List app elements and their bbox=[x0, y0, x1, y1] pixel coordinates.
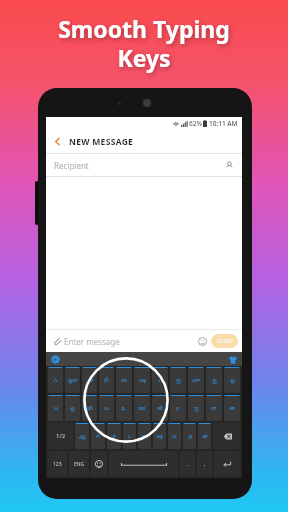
staticText: ா bbox=[86, 377, 94, 383]
staticText: . bbox=[187, 460, 189, 468]
staticText: ENG bbox=[74, 461, 85, 468]
button[interactable]: ENG bbox=[69, 451, 89, 477]
button[interactable]: Themes bbox=[227, 354, 238, 365]
button[interactable]: ஃ bbox=[152, 367, 168, 393]
button[interactable]: ற bbox=[183, 423, 196, 449]
button[interactable]: ஸு bbox=[188, 367, 204, 393]
button[interactable]: ஆ bbox=[75, 423, 89, 449]
button[interactable] bbox=[109, 451, 178, 477]
staticText: 123 bbox=[53, 461, 62, 468]
staticText: ஐ bbox=[212, 377, 217, 383]
staticText: NEW MESSAGE bbox=[69, 136, 134, 148]
button[interactable]: ஊ bbox=[134, 395, 150, 421]
staticText: ட bbox=[128, 433, 132, 439]
staticText: ன bbox=[202, 433, 208, 439]
staticText: ஃ bbox=[158, 377, 163, 383]
button[interactable]: ஈ bbox=[91, 423, 105, 449]
button[interactable]: ஙி bbox=[82, 395, 97, 421]
staticText: ஊ bbox=[138, 405, 146, 411]
staticText: ஓ bbox=[230, 377, 235, 383]
staticText: ன bbox=[229, 405, 235, 411]
button[interactable]: ம bbox=[99, 395, 114, 421]
staticText: ஈ bbox=[96, 433, 100, 439]
staticText: ஷ bbox=[156, 433, 163, 439]
button[interactable]: ம bbox=[168, 423, 181, 449]
staticText: ஸ bbox=[121, 377, 127, 383]
button[interactable]: ஃ bbox=[48, 367, 63, 393]
staticText: ஙி bbox=[87, 405, 93, 411]
staticText: , bbox=[204, 460, 206, 468]
staticText: ற bbox=[188, 433, 192, 439]
button[interactable]: ண bbox=[138, 423, 151, 449]
button[interactable] bbox=[214, 451, 240, 477]
button[interactable] bbox=[213, 423, 240, 449]
staticText: ர bbox=[176, 405, 180, 411]
staticText: ஙி bbox=[157, 405, 163, 411]
button[interactable]: ஜ bbox=[170, 367, 186, 393]
button[interactable] bbox=[91, 451, 107, 477]
button[interactable]: 123 bbox=[48, 451, 67, 477]
staticText: Enter message bbox=[64, 336, 120, 347]
button[interactable]: உ bbox=[116, 395, 132, 421]
staticText: ம bbox=[172, 433, 177, 439]
staticText: ஔ bbox=[68, 377, 78, 383]
button[interactable]: Emoji bbox=[195, 334, 209, 348]
staticText: 10:11 AM bbox=[209, 119, 238, 128]
button[interactable]: Attach file bbox=[50, 334, 64, 348]
button[interactable]: ஷ bbox=[153, 423, 166, 449]
staticText: ஒ bbox=[70, 405, 75, 411]
button[interactable]: SEND bbox=[211, 334, 238, 348]
button[interactable]: Keyboard settings bbox=[50, 354, 61, 365]
staticText: ள bbox=[211, 405, 217, 411]
staticText: ய bbox=[54, 405, 58, 411]
button[interactable]: ஐ bbox=[206, 367, 222, 393]
button[interactable]: 1/2 bbox=[48, 423, 73, 449]
button[interactable]: , bbox=[197, 451, 212, 477]
staticText: ஜ bbox=[194, 405, 199, 411]
button[interactable]: ஸ bbox=[116, 367, 132, 393]
button[interactable]: . bbox=[180, 451, 195, 477]
staticText: உ bbox=[121, 405, 127, 411]
staticText: ண bbox=[141, 433, 149, 439]
button[interactable]: ஙி bbox=[152, 395, 168, 421]
button[interactable]: ரி bbox=[99, 367, 114, 393]
staticText: ஸு bbox=[192, 377, 201, 383]
button[interactable]: ஒ bbox=[65, 395, 80, 421]
button[interactable]: ா bbox=[82, 367, 97, 393]
button[interactable]: Back bbox=[46, 130, 69, 153]
button[interactable]: ன bbox=[198, 423, 211, 449]
button[interactable]: ட bbox=[123, 423, 136, 449]
staticText: ஜ bbox=[176, 377, 181, 383]
button[interactable]: ய bbox=[48, 395, 63, 421]
button[interactable]: ர bbox=[170, 395, 186, 421]
staticText: ச bbox=[112, 433, 116, 439]
staticText: ம bbox=[104, 405, 109, 411]
staticText: Smooth Typing Keys bbox=[0, 13, 288, 74]
staticText: ரி bbox=[104, 377, 109, 383]
staticText: Recipient bbox=[54, 160, 89, 171]
staticText: ஆ bbox=[78, 433, 86, 439]
button[interactable]: ஓ bbox=[224, 367, 240, 393]
button[interactable]: ள bbox=[206, 395, 222, 421]
button[interactable]: ஷ bbox=[134, 367, 150, 393]
button[interactable]: ன bbox=[224, 395, 240, 421]
staticText: ஷ bbox=[139, 377, 146, 383]
button[interactable]: ச bbox=[107, 423, 121, 449]
staticText: 1/2 bbox=[56, 432, 66, 440]
button[interactable]: ஔ bbox=[65, 367, 80, 393]
button[interactable]: ஜ bbox=[188, 395, 204, 421]
staticText: ஃ bbox=[53, 377, 58, 383]
button[interactable]: Recipient bbox=[46, 154, 242, 176]
staticText: 62% bbox=[189, 119, 202, 128]
staticText: SEND bbox=[217, 337, 233, 345]
